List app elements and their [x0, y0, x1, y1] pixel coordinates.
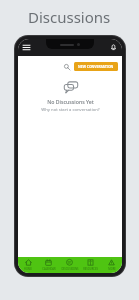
staticText: Why not start a conversation? — [41, 107, 100, 113]
button[interactable]: NEW CONVERSATION — [74, 62, 118, 71]
button[interactable]: Search — [61, 61, 72, 72]
button[interactable]: CALENDAR — [38, 257, 59, 273]
staticText: MORE — [108, 267, 116, 271]
button[interactable]: MORE — [101, 257, 122, 273]
button[interactable]: Menu — [21, 42, 32, 53]
staticText: NEW CONVERSATION — [78, 64, 114, 69]
staticText: Discussions — [28, 7, 111, 27]
button[interactable]: HOME — [18, 257, 38, 273]
staticText: RESOURCES — [83, 267, 98, 271]
staticText: CALENDAR — [42, 267, 56, 271]
staticText: No Discussions Yet — [47, 98, 94, 105]
staticText: HOME — [24, 267, 32, 271]
button[interactable]: RESOURCES — [80, 257, 101, 273]
button[interactable]: DISCUSSIONS — [59, 257, 80, 273]
button[interactable]: Notifications — [108, 42, 119, 53]
staticText: DISCUSSIONS — [61, 267, 79, 271]
